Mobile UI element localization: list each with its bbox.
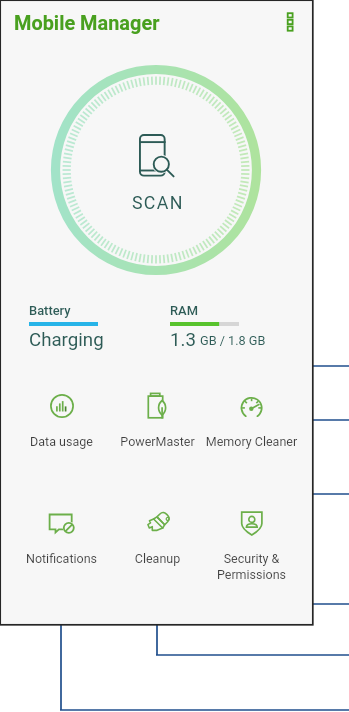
staticText: Notifications <box>14 551 109 566</box>
staticText: GB / 1.8 GB <box>200 333 266 348</box>
staticText: PowerMaster <box>110 434 205 449</box>
button[interactable]: Security & Permissions <box>204 505 299 565</box>
button[interactable]: Battery <box>25 301 145 353</box>
button[interactable]: Data usage <box>14 389 109 433</box>
staticText: Security & Permissions <box>204 551 299 582</box>
button[interactable]: RAM <box>166 301 286 353</box>
button[interactable]: Mobile Manager <box>14 12 160 35</box>
staticText: SCAN <box>132 192 184 213</box>
staticText: Memory Cleaner <box>204 434 299 449</box>
button[interactable]: PowerMaster <box>110 389 205 433</box>
staticText: Data usage <box>14 434 109 449</box>
button[interactable]: More options <box>278 6 306 40</box>
button[interactable]: Notifications <box>14 505 109 549</box>
staticText: Battery <box>29 303 71 318</box>
staticText: Cleanup <box>110 551 205 566</box>
button[interactable]: Scan <box>49 63 263 277</box>
button[interactable]: Cleanup <box>110 505 205 549</box>
staticText: Charging <box>29 329 104 351</box>
button[interactable]: Memory Cleaner <box>204 389 299 433</box>
staticText: 1.3 <box>170 329 196 351</box>
staticText: RAM <box>170 303 198 318</box>
